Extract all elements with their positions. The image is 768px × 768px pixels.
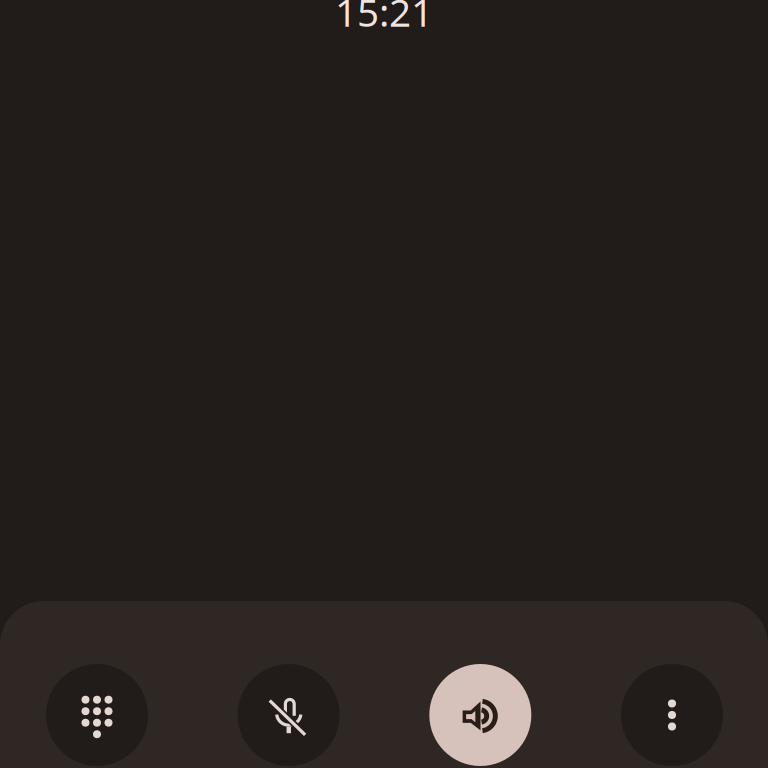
button[interactable]: Keypad [46, 664, 148, 766]
button[interactable]: More options [621, 664, 723, 766]
button[interactable]: Speaker [429, 664, 531, 766]
staticText: 15:21 [335, 0, 433, 37]
button[interactable]: Mute [238, 664, 340, 766]
